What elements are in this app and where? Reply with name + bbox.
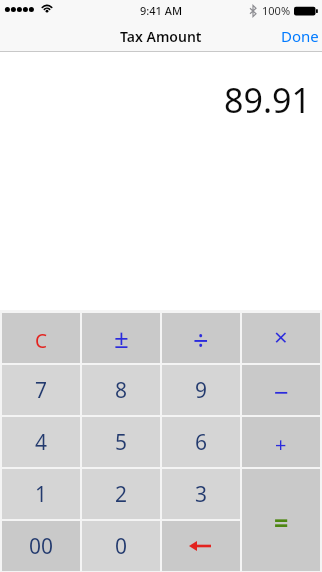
staticText: 8 (115, 376, 128, 405)
button[interactable]: = (242, 469, 320, 571)
staticText: 9:41 AM (140, 3, 183, 18)
staticText: 2 (115, 480, 128, 509)
button[interactable]: Done (278, 22, 322, 50)
staticText: 1 (35, 480, 48, 509)
staticText: × (274, 320, 288, 353)
button[interactable]: − (242, 365, 320, 415)
staticText: ÷ (193, 321, 209, 358)
staticText: − (274, 374, 289, 409)
button[interactable]: + (242, 417, 320, 467)
staticText: Done (281, 26, 319, 46)
button[interactable]: 5 (82, 417, 160, 467)
staticText: 4 (35, 428, 48, 457)
staticText: = (274, 505, 289, 539)
button[interactable]: 2 (82, 469, 160, 519)
staticText: 5 (115, 428, 128, 457)
staticText: + (275, 431, 287, 458)
staticText: 00 (29, 532, 54, 561)
button[interactable]: 6 (162, 417, 240, 467)
button[interactable]: ± (82, 313, 160, 363)
staticText: 7 (35, 376, 48, 405)
button[interactable]: × (242, 313, 320, 363)
button[interactable]: 4 (2, 417, 80, 467)
button[interactable]: 00 (2, 521, 80, 571)
staticText: 9 (195, 376, 208, 405)
staticText: 0 (115, 532, 128, 561)
staticText: Tax Amount (120, 27, 202, 46)
button[interactable] (162, 521, 240, 571)
staticText: 100% (262, 3, 291, 18)
button[interactable]: C (2, 313, 80, 363)
staticText: 89.91 (224, 77, 311, 123)
button[interactable]: 1 (2, 469, 80, 519)
staticText: C (35, 328, 48, 354)
button[interactable]: 0 (82, 521, 160, 571)
button[interactable]: 3 (162, 469, 240, 519)
button[interactable]: 8 (82, 365, 160, 415)
button[interactable]: 9 (162, 365, 240, 415)
staticText: 6 (195, 428, 208, 457)
button[interactable]: 7 (2, 365, 80, 415)
staticText: ± (114, 320, 129, 355)
button[interactable]: ÷ (162, 313, 240, 363)
staticText: 3 (195, 480, 208, 509)
